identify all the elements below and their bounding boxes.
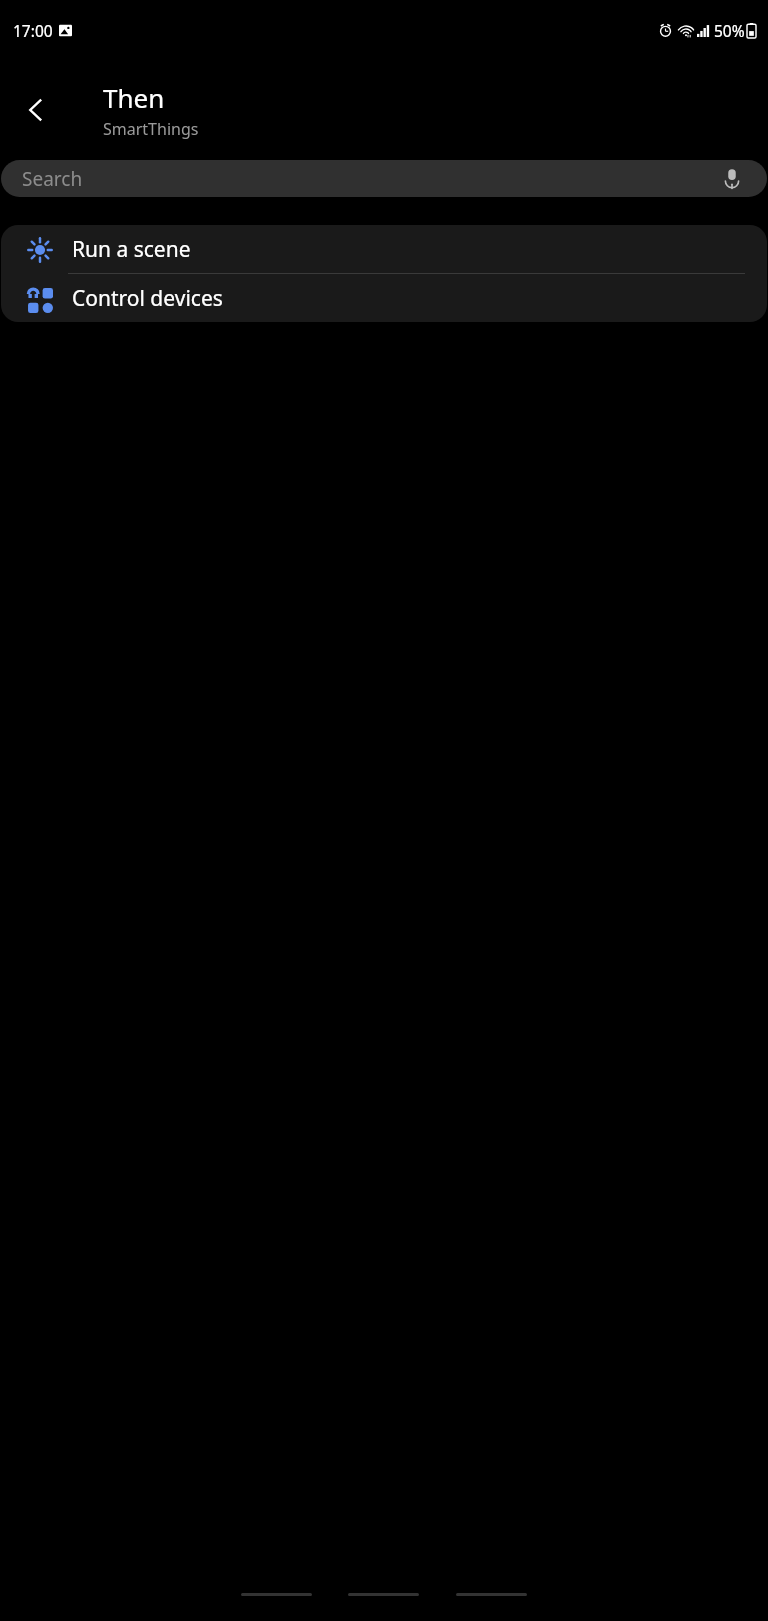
- button[interactable]: Home: [348, 1593, 419, 1596]
- button[interactable]: Run a scene: [1, 225, 767, 273]
- staticText: Control devices: [72, 284, 223, 313]
- button[interactable]: Search: [1, 160, 767, 197]
- staticText: 50%: [714, 20, 745, 41]
- button[interactable]: Back: [10, 84, 62, 136]
- button[interactable]: Voice search: [719, 166, 745, 192]
- staticText: 17:00: [13, 20, 53, 41]
- button[interactable]: Recents: [241, 1593, 312, 1596]
- staticText: Run a scene: [72, 235, 191, 264]
- button[interactable]: Control devices: [1, 274, 767, 322]
- staticText: Search: [22, 166, 83, 192]
- staticText: Then: [103, 80, 165, 115]
- button[interactable]: Back: [456, 1593, 527, 1596]
- staticText: SmartThings: [103, 118, 199, 140]
